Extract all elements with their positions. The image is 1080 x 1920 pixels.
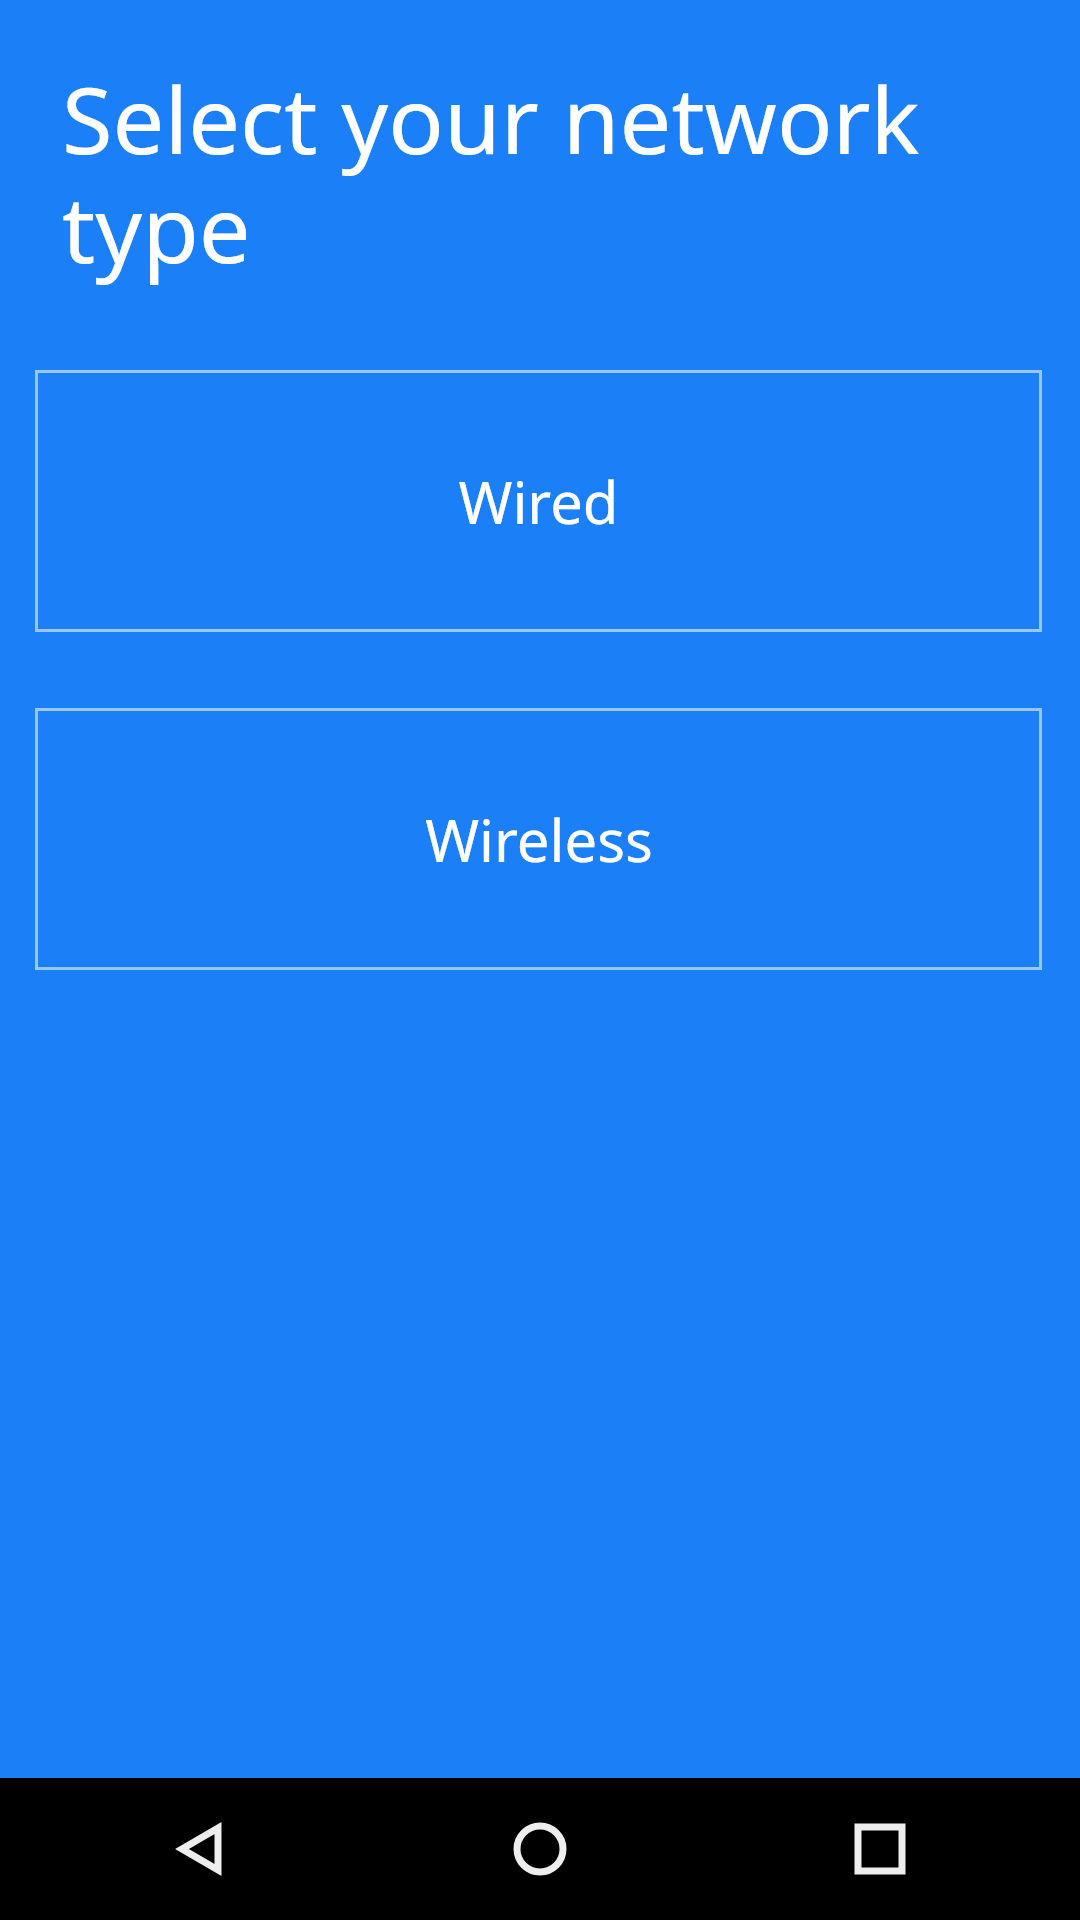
button[interactable]: Recent apps (800, 1778, 960, 1920)
button[interactable]: Back (120, 1778, 280, 1920)
staticText: Wireless (425, 800, 653, 879)
staticText: Wired (458, 462, 619, 541)
button[interactable]: Home (460, 1778, 620, 1920)
button[interactable]: Wireless (35, 708, 1042, 970)
staticText: Select your network type (62, 56, 1080, 290)
button[interactable]: Wired (35, 370, 1042, 632)
